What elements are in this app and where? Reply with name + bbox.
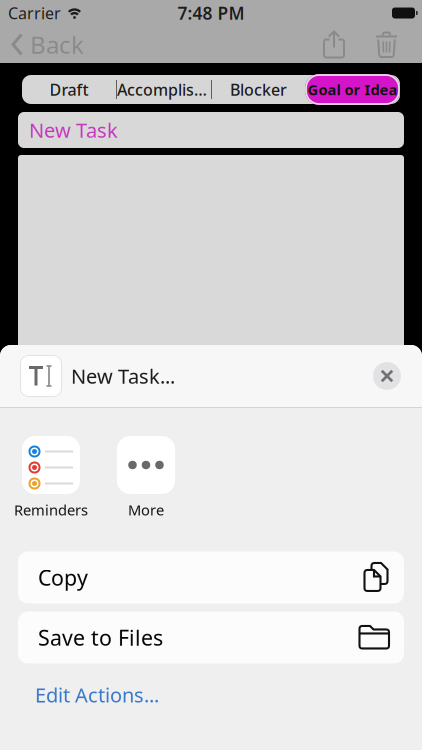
- button[interactable]: Edit Actions...: [35, 681, 159, 708]
- button[interactable]: Accomplish…: [117, 75, 211, 104]
- staticText: Save to Files: [38, 623, 163, 652]
- staticText: New Task: [29, 117, 118, 143]
- staticText: New Task...: [71, 363, 175, 389]
- staticText: More: [128, 500, 164, 519]
- staticText: Goal or Idea: [307, 80, 397, 99]
- button[interactable]: Copy: [18, 551, 404, 603]
- staticText: Edit Actions...: [35, 681, 159, 708]
- button[interactable]: Save to Files: [18, 611, 404, 663]
- staticText: Copy: [38, 563, 88, 592]
- staticText: Back: [30, 29, 84, 60]
- button[interactable]: Delete: [376, 31, 397, 58]
- button[interactable]: Back: [0, 29, 84, 60]
- button[interactable]: Reminders: [8, 436, 94, 519]
- staticText: 7:48 PM: [177, 1, 244, 24]
- button[interactable]: More: [117, 436, 175, 519]
- staticText: Accomplish…: [117, 79, 211, 100]
- button[interactable]: Close: [373, 362, 401, 390]
- button[interactable]: Draft: [22, 75, 116, 104]
- button[interactable]: Goal or Idea: [305, 74, 400, 105]
- staticText: Carrier: [8, 2, 61, 24]
- staticText: Blocker: [230, 79, 287, 100]
- staticText: Reminders: [14, 500, 88, 519]
- button[interactable]: Blocker: [212, 75, 305, 104]
- button[interactable]: Share: [323, 30, 345, 58]
- staticText: Draft: [49, 79, 88, 100]
